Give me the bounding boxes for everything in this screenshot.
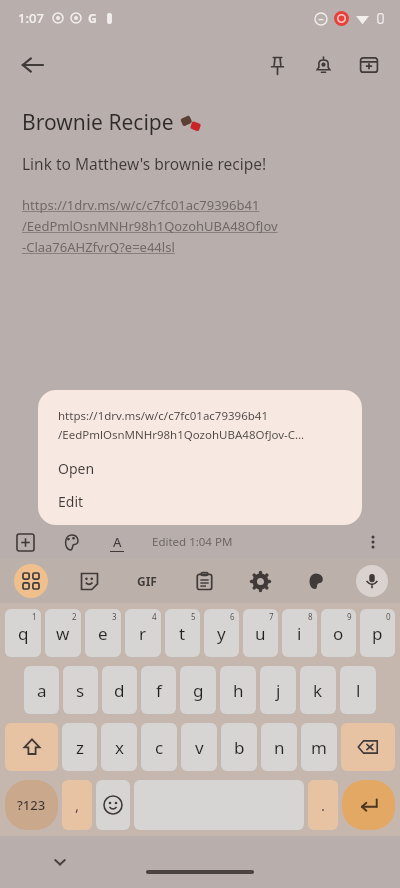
staticText: x [115,736,124,759]
staticText: . [321,795,326,815]
staticText: /EedPmlOsnMNHr98h1QozohUBA48OfJov-C… [58,427,305,443]
button[interactable]: Shift [5,723,58,771]
button[interactable]: GIF [130,564,164,598]
button[interactable]: t [165,609,200,657]
staticText: q [18,622,29,645]
button[interactable]: Format [104,529,130,555]
button[interactable]: d [102,666,137,714]
button[interactable]: Hide keyboard [46,848,74,876]
button[interactable]: p [360,609,395,657]
staticText: y [217,622,226,645]
staticText: G [88,10,97,26]
button[interactable]: i [282,609,317,657]
button[interactable]: More options [360,529,386,555]
staticText: 8 [308,611,313,622]
button[interactable]: x [101,723,137,771]
staticText: , [75,795,80,815]
staticText: v [195,736,204,759]
button[interactable]: b [221,723,257,771]
button[interactable]: Color [58,529,84,555]
staticText: e [98,622,108,645]
button[interactable]: Reminder [300,42,346,88]
button[interactable]: Edit [58,492,346,511]
button[interactable]: u [243,609,278,657]
button[interactable]: , [62,780,92,830]
button[interactable]: ?123 [5,780,58,830]
staticText: r [139,622,147,645]
staticText: k [313,679,323,702]
button[interactable]: l [340,666,376,714]
staticText: A [113,533,122,551]
staticText: p [372,622,383,645]
button[interactable]: Emoji [96,780,130,830]
staticText: Brownie Recipe [22,108,174,137]
button[interactable]: Toolbox [14,564,48,598]
button[interactable]: Enter [342,780,395,830]
staticText: w [56,622,70,645]
button[interactable]: h [220,666,256,714]
staticText: t [179,622,186,645]
staticText: Open [58,459,95,478]
staticText: z [76,736,84,759]
staticText: n [274,736,285,759]
staticText: l [356,679,361,702]
staticText: 3 [112,611,117,622]
staticText: m [311,736,327,759]
staticText: ?123 [17,796,46,814]
staticText: 5 [191,611,196,622]
staticText: 7 [269,611,274,622]
staticText: Link to Matthew's brownie recipe! [22,153,267,174]
staticText: c [155,736,164,759]
button[interactable]: q [5,609,41,657]
staticText: b [234,736,245,759]
button[interactable]: Archive [346,42,392,88]
button[interactable]: Backspace [341,723,395,771]
staticText: h [233,679,244,702]
button[interactable]: w [45,609,81,657]
staticText: GIF [137,573,157,589]
button[interactable]: Pin [254,42,300,88]
button[interactable]: Add [12,529,38,555]
button[interactable]: z [62,723,97,771]
button[interactable]: /EedPmlOsnMNHr98h1QozohUBA48OfJov [22,217,278,235]
staticText: f [156,679,162,702]
staticText: j [276,679,281,702]
button[interactable]: Voice input [356,565,388,597]
button[interactable]: a [24,666,59,714]
staticText: 1:07 [18,9,44,27]
button[interactable]: -Claa76AHZfvrQ?e=e44lsl [22,238,175,256]
button[interactable]: c [141,723,177,771]
staticText: d [114,679,125,702]
button[interactable]: s [63,666,98,714]
button[interactable]: Themes [300,565,332,597]
button[interactable]: f [141,666,176,714]
button[interactable]: e [85,609,121,657]
staticText: 9 [347,611,352,622]
button[interactable]: g [180,666,216,714]
button[interactable]: Back [10,43,54,87]
staticText: 2 [72,611,77,622]
button[interactable]: r [125,609,161,657]
button[interactable]: n [261,723,297,771]
staticText: https://1drv.ms/w/c/c7fc01ac79396b41 [58,408,268,424]
staticText: Edit [58,492,84,511]
button[interactable]: j [260,666,296,714]
button[interactable]: Clipboard [188,565,220,597]
staticText: 6 [230,611,235,622]
button[interactable]: . [308,780,338,830]
button[interactable]: y [204,609,239,657]
button[interactable]: o [321,609,356,657]
button[interactable]: m [301,723,337,771]
button[interactable]: Stickers [73,565,105,597]
staticText: 1 [32,611,37,622]
staticText: 0 [386,611,391,622]
button[interactable]: https://1drv.ms/w/c/c7fc01ac79396b41 [22,196,260,214]
button[interactable]: Settings [244,565,276,597]
staticText: g [193,679,204,702]
button[interactable]: Open [58,459,346,478]
staticText: Edited 1:04 PM [152,534,233,550]
button[interactable]: k [300,666,336,714]
staticText: s [76,679,85,702]
button[interactable]: v [181,723,217,771]
